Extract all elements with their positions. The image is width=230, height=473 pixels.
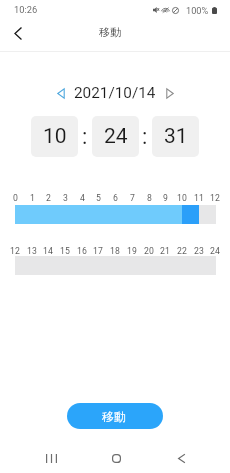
staticText: 移動 (102, 410, 126, 425)
staticText: 31 (164, 124, 188, 149)
staticText: 12 (10, 246, 20, 255)
button[interactable]: 10 (31, 116, 78, 157)
staticText: 4 (80, 193, 85, 202)
staticText: 10 (177, 193, 187, 202)
staticText: 17 (93, 246, 103, 255)
staticText: 6 (113, 193, 118, 202)
staticText: 11 (194, 193, 204, 202)
button[interactable]: Home (98, 440, 134, 473)
staticText: 12 (210, 193, 220, 202)
staticText: 7 (130, 193, 135, 202)
staticText: 9 (163, 193, 168, 202)
staticText: 16 (77, 246, 87, 255)
staticText: 1 (30, 193, 35, 202)
staticText: 20 (144, 246, 154, 255)
staticText: 10:26 (14, 4, 38, 15)
button[interactable]: Next day (161, 84, 179, 102)
staticText: : (82, 124, 88, 150)
staticText: 2021/10/14 (74, 84, 156, 102)
staticText: 15 (60, 246, 70, 255)
button[interactable]: 24 (92, 116, 139, 157)
staticText: 13 (27, 246, 37, 255)
staticText: 0 (13, 193, 18, 202)
staticText: 23 (194, 246, 204, 255)
staticText: 14 (43, 246, 53, 255)
button[interactable]: Previous day (52, 84, 70, 102)
staticText: 3 (63, 193, 68, 202)
staticText: 10 (43, 124, 67, 149)
staticText: 24 (104, 124, 128, 149)
staticText: 22 (177, 246, 187, 255)
staticText: 移動 (99, 26, 121, 40)
staticText: 18 (110, 246, 120, 255)
staticText: 21 (160, 246, 170, 255)
button[interactable]: 移動 (67, 403, 163, 429)
staticText: 24 (210, 246, 220, 255)
staticText: 2 (46, 193, 51, 202)
staticText: 5 (96, 193, 101, 202)
staticText: 100% (186, 5, 209, 16)
staticText: 8 (147, 193, 152, 202)
button[interactable]: Back (163, 440, 199, 473)
button[interactable]: Back (3, 19, 32, 48)
button[interactable]: 31 (152, 116, 199, 157)
staticText: : (142, 124, 148, 150)
staticText: 19 (127, 246, 137, 255)
button[interactable]: Recent apps (33, 440, 69, 473)
